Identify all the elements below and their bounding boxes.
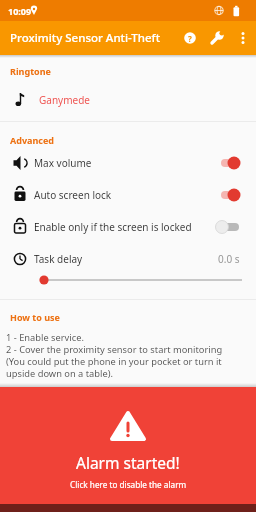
- button[interactable]: [208, 29, 226, 47]
- staticText: Enable only if the screen is locked: [34, 220, 192, 234]
- staticText: 1 - Enable service. 2 - Cover the proxim…: [6, 331, 254, 380]
- staticText: 10:09: [8, 5, 32, 17]
- button[interactable]: [0, 268, 256, 292]
- button[interactable]: [214, 211, 242, 243]
- staticText: Proximity Sensor Anti-Theft: [10, 30, 161, 46]
- button[interactable]: ?: [181, 29, 199, 47]
- staticText: ?: [188, 33, 192, 44]
- button[interactable]: Task delay: [0, 243, 256, 275]
- staticText: Alarm started!: [76, 452, 180, 472]
- staticText: 0.0 s: [218, 252, 240, 266]
- button[interactable]: [214, 147, 242, 179]
- staticText: Click here to disable the alarm: [70, 479, 187, 490]
- staticText: Advanced: [10, 134, 55, 146]
- staticText: Auto screen lock: [34, 188, 112, 202]
- staticText: Max volume: [34, 156, 92, 170]
- button[interactable]: [234, 29, 252, 47]
- button[interactable]: Max volume: [0, 147, 256, 179]
- button[interactable]: Enable only if the screen is locked: [0, 211, 256, 243]
- button[interactable]: Auto screen lock: [0, 179, 256, 211]
- staticText: How to use: [10, 311, 60, 323]
- staticText: Ringtone: [10, 65, 51, 77]
- button[interactable]: Ganymede: [0, 84, 256, 116]
- button[interactable]: [214, 179, 242, 211]
- staticText: Task delay: [34, 252, 83, 266]
- button[interactable]: Alarm started!: [0, 387, 256, 512]
- staticText: Ganymede: [39, 93, 90, 107]
